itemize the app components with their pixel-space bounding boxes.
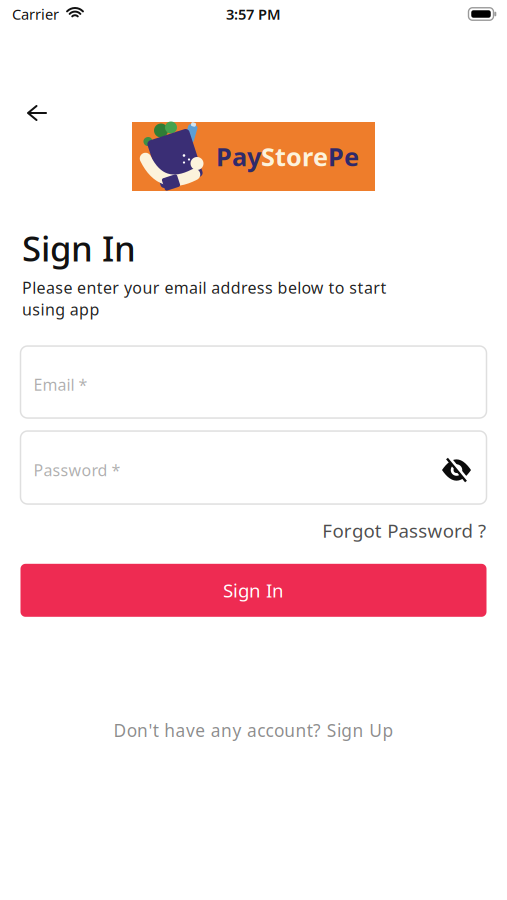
staticText: Store: [261, 140, 328, 173]
staticText: Sign In: [223, 578, 284, 603]
button[interactable]: Forgot Password ?: [322, 518, 486, 543]
staticText: Please enter your email address below to…: [22, 277, 386, 320]
staticText: Email *: [33, 374, 87, 395]
button[interactable]: Password *: [20, 431, 486, 504]
staticText: Don't have any account? Sign Up: [113, 719, 393, 742]
button[interactable]: Email *: [20, 346, 486, 418]
staticText: 3:57 PM: [226, 4, 281, 24]
button[interactable]: Show password: [441, 458, 471, 482]
staticText: Carrier: [12, 4, 59, 24]
button[interactable]: Sign In: [20, 564, 486, 617]
button[interactable]: Don't have any account? Sign Up: [113, 719, 393, 742]
staticText: Password *: [33, 459, 120, 481]
staticText: Sign In: [22, 225, 136, 271]
staticText: Pay: [216, 140, 261, 173]
staticText: Forgot Password ?: [322, 518, 486, 543]
button[interactable]: Back: [27, 105, 47, 121]
staticText: Pe: [328, 140, 359, 173]
